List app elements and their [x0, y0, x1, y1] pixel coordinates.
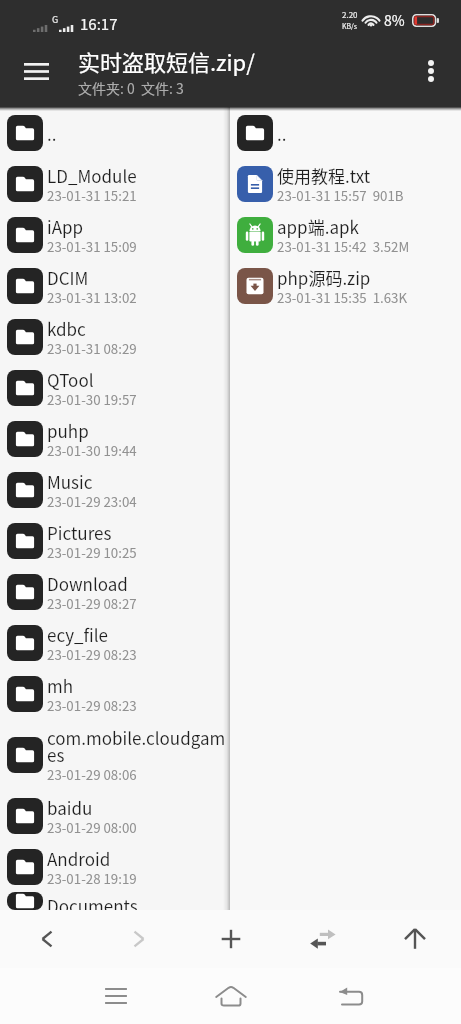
button[interactable]: ecy_file: [0, 617, 230, 668]
staticText: kdbc: [47, 316, 86, 341]
staticText: 23-01-31 15:09: [47, 237, 137, 256]
staticText: ..: [277, 121, 287, 146]
staticText: php源码.zip: [277, 265, 371, 290]
button[interactable]: Back: [0, 910, 93, 968]
button[interactable]: More options: [409, 49, 453, 93]
button[interactable]: mh: [0, 668, 230, 719]
staticText: iApp: [47, 214, 84, 239]
button[interactable]: ..: [0, 107, 230, 158]
button[interactable]: Recents: [89, 968, 143, 1024]
staticText: 23-01-29 08:00: [47, 818, 137, 837]
staticText: puhp: [47, 418, 89, 443]
button[interactable]: Forward: [93, 910, 185, 968]
staticText: LD_Module: [47, 163, 137, 188]
staticText: 23-01-31 08:29: [47, 339, 137, 358]
button[interactable]: app端.apk: [230, 209, 461, 260]
button[interactable]: Documents: [0, 892, 230, 910]
button[interactable]: ..: [230, 107, 461, 158]
staticText: 23-01-29 08:27: [47, 594, 137, 613]
staticText: Music: [47, 469, 93, 494]
staticText: 23-01-30 19:57: [47, 390, 137, 409]
staticText: ..: [47, 121, 57, 146]
staticText: Android: [47, 846, 111, 871]
staticText: 23-01-29 23:04: [47, 492, 137, 511]
button[interactable]: Home: [204, 968, 258, 1024]
button[interactable]: Pictures: [0, 515, 230, 566]
button[interactable]: Download: [0, 566, 230, 617]
staticText: KB/s: [342, 21, 358, 31]
staticText: 23-01-30 19:44: [47, 441, 137, 460]
button[interactable]: New: [185, 910, 277, 968]
staticText: DCIM: [47, 265, 89, 290]
staticText: 使用教程.txt: [277, 163, 371, 188]
staticText: 2.20: [342, 9, 358, 21]
staticText: 23-01-29 08:06: [47, 765, 137, 784]
staticText: 文件夹: 0 文件: 3: [78, 78, 184, 98]
button[interactable]: Switch panes: [277, 910, 369, 968]
staticText: com.mobile.cloudgames: [47, 725, 230, 767]
button[interactable]: Menu: [12, 47, 60, 95]
button[interactable]: Music: [0, 464, 230, 515]
staticText: 23-01-31 15:57 901B: [277, 186, 404, 205]
button[interactable]: com.mobile.cloudgames: [0, 719, 230, 790]
staticText: 23-01-31 13:02: [47, 288, 137, 307]
staticText: 23-01-31 15:35 1.63K: [277, 288, 408, 307]
button[interactable]: 使用教程.txt: [230, 158, 461, 209]
button[interactable]: DCIM: [0, 260, 230, 311]
staticText: QTool: [47, 367, 94, 392]
staticText: 23-01-29 08:23: [47, 696, 137, 715]
button[interactable]: LD_Module: [0, 158, 230, 209]
button[interactable]: puhp: [0, 413, 230, 464]
staticText: Documents: [47, 893, 138, 911]
staticText: 23-01-29 08:23: [47, 645, 137, 664]
staticText: G: [52, 13, 59, 26]
button[interactable]: Up: [369, 910, 461, 968]
staticText: baidu: [47, 795, 93, 820]
button[interactable]: php源码.zip: [230, 260, 461, 311]
button[interactable]: iApp: [0, 209, 230, 260]
staticText: Download: [47, 571, 128, 596]
button[interactable]: Back: [324, 968, 378, 1024]
staticText: Pictures: [47, 520, 112, 545]
button[interactable]: kdbc: [0, 311, 230, 362]
staticText: 23-01-31 15:42 3.52M: [277, 237, 410, 256]
staticText: 16:17: [80, 13, 118, 35]
staticText: app端.apk: [277, 214, 359, 239]
staticText: 23-01-31 15:21: [47, 186, 137, 205]
button[interactable]: QTool: [0, 362, 230, 413]
staticText: 实时盗取短信.zip/: [78, 45, 255, 77]
staticText: mh: [47, 673, 74, 698]
staticText: 8%: [384, 10, 405, 30]
staticText: 23-01-28 19:19: [47, 869, 137, 888]
staticText: 23-01-29 10:25: [47, 543, 137, 562]
button[interactable]: Android: [0, 841, 230, 892]
button[interactable]: baidu: [0, 790, 230, 841]
staticText: ecy_file: [47, 622, 109, 647]
